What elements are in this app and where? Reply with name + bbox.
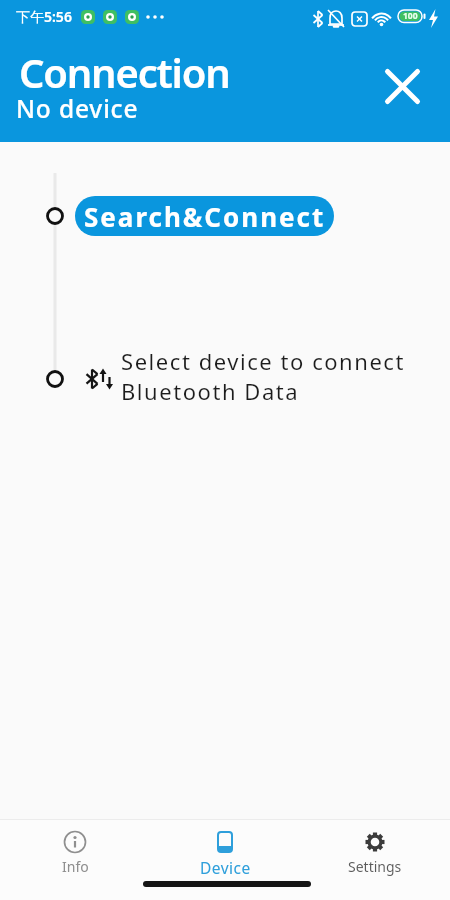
staticText: No device <box>16 92 139 125</box>
staticText: Device <box>200 857 251 878</box>
staticText: 100 <box>403 10 418 22</box>
button[interactable]: Device <box>150 820 300 878</box>
staticText: Info <box>62 857 89 876</box>
staticText: 下午5:56 <box>16 7 72 26</box>
button[interactable]: Info <box>0 820 150 876</box>
staticText: Settings <box>348 857 402 876</box>
staticText: Connection <box>19 45 230 99</box>
staticText: Search&Connect <box>84 199 326 234</box>
button[interactable]: Settings <box>300 820 450 876</box>
staticText: Select device to connect Bluetooth Data <box>121 346 405 406</box>
button[interactable] <box>378 62 426 110</box>
button[interactable]: Search&Connect <box>75 196 334 236</box>
